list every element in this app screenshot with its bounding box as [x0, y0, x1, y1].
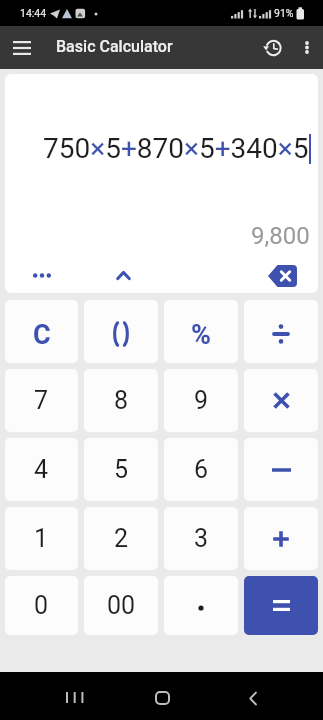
staticText: 14:44 [20, 7, 47, 19]
button[interactable] [244, 369, 318, 432]
staticText: 4 [34, 455, 49, 484]
button[interactable] [244, 507, 318, 570]
staticText: 1 [34, 524, 49, 553]
button[interactable] [244, 300, 318, 363]
button[interactable] [254, 29, 291, 66]
staticText: 00 [107, 591, 136, 620]
button[interactable] [164, 576, 238, 635]
staticText: 3 [194, 524, 209, 553]
button[interactable]: 5 [84, 438, 158, 501]
button[interactable]: 3 [164, 507, 238, 570]
button[interactable] [0, 26, 43, 69]
button[interactable]: 7 [5, 369, 78, 432]
button[interactable] [108, 262, 138, 288]
button[interactable] [291, 29, 323, 66]
button[interactable]: 4 [5, 438, 78, 501]
staticText: 8 [114, 386, 129, 415]
button[interactable] [244, 576, 318, 635]
button[interactable] [55, 677, 95, 717]
staticText: 7 [34, 386, 49, 415]
button[interactable]: 0 [5, 576, 78, 635]
button[interactable] [260, 260, 304, 292]
staticText: C [33, 319, 51, 351]
button[interactable]: 1 [5, 507, 78, 570]
staticText: Basic Calculator [56, 37, 173, 56]
staticText: 5 [114, 455, 129, 484]
staticText: 91% [274, 7, 294, 19]
staticText: 9,800 [251, 222, 310, 250]
button[interactable]: 8 [84, 369, 158, 432]
staticText: 750×5+870×5+340×5 [43, 132, 309, 165]
button[interactable]: 2 [84, 507, 158, 570]
button[interactable] [84, 300, 158, 363]
staticText: 2 [114, 524, 129, 553]
button[interactable] [233, 678, 273, 718]
button[interactable]: 6 [164, 438, 238, 501]
button[interactable]: C [5, 300, 78, 363]
button[interactable] [142, 678, 182, 718]
button[interactable]: 9 [164, 369, 238, 432]
staticText: % [191, 319, 211, 351]
staticText: 6 [194, 455, 209, 484]
staticText: 9 [194, 386, 209, 415]
button[interactable]: % [164, 300, 238, 363]
staticText: 0 [34, 591, 49, 620]
button[interactable] [244, 438, 318, 501]
button[interactable] [27, 262, 57, 288]
button[interactable]: 00 [84, 576, 158, 635]
